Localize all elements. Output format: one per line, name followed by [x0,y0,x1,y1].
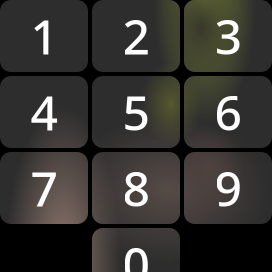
button[interactable]: 9 [184,152,272,224]
button[interactable]: 6 [184,76,272,148]
staticText: 6 [214,80,241,144]
staticText: 4 [30,80,57,144]
button[interactable]: 8 [92,152,180,224]
staticText: 8 [122,156,149,220]
button[interactable]: 0 [92,228,180,272]
staticText: 0 [122,232,149,272]
staticText: 7 [30,156,57,220]
button[interactable]: 7 [0,152,88,224]
button[interactable]: 2 [92,0,180,72]
staticText: 2 [122,4,149,68]
button[interactable]: 5 [92,76,180,148]
button[interactable]: 1 [0,0,88,72]
staticText: 9 [214,156,241,220]
staticText: 3 [214,4,241,68]
button[interactable]: 4 [0,76,88,148]
button[interactable]: 3 [184,0,272,72]
staticText: 1 [30,4,57,68]
staticText: 5 [122,80,149,144]
